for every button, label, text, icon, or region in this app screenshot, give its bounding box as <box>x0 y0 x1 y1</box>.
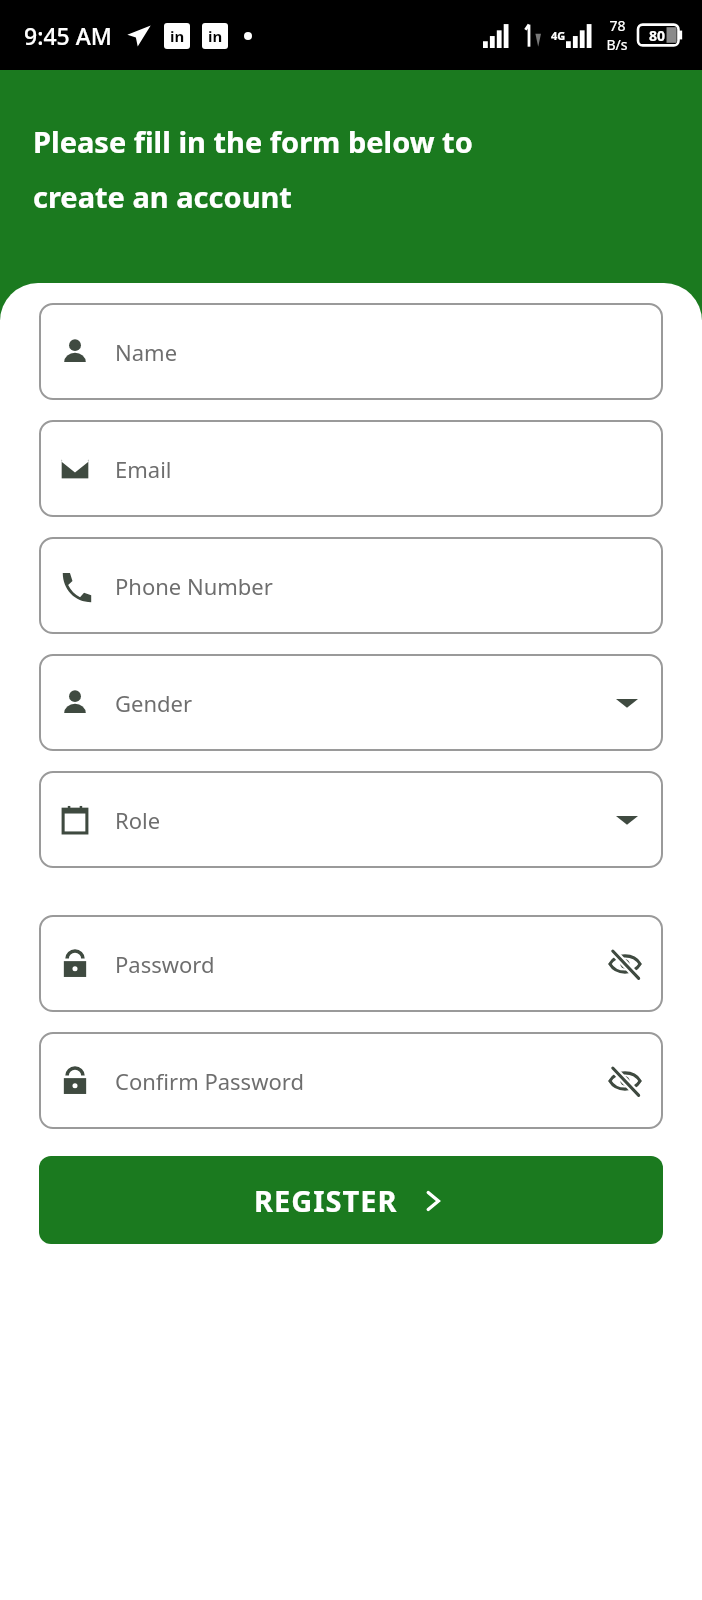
staticText: in <box>208 26 223 46</box>
staticText: Name <box>115 337 645 367</box>
other: Open dropdown <box>609 685 645 721</box>
staticText: 9:45 AM <box>24 20 112 51</box>
staticText: 4G <box>551 28 566 43</box>
staticText: 80 <box>649 26 666 45</box>
staticText: B/s <box>606 35 628 54</box>
button[interactable]: Role <box>39 771 663 868</box>
button[interactable]: Gender <box>39 654 663 751</box>
staticText: 78 <box>609 16 626 35</box>
button[interactable]: Phone Number <box>39 537 663 634</box>
button[interactable]: Name <box>39 303 663 400</box>
staticText: Password <box>115 949 605 979</box>
button[interactable]: Show password <box>605 1061 645 1101</box>
button[interactable]: Password <box>39 915 663 1012</box>
staticText: Please fill in the form below to create … <box>33 122 473 217</box>
staticText: REGISTER <box>254 1181 398 1220</box>
staticText: Email <box>115 454 645 484</box>
button[interactable]: Show password <box>605 944 645 984</box>
staticText: Role <box>115 805 609 835</box>
staticText: Gender <box>115 688 609 718</box>
staticText: in <box>170 26 185 46</box>
button[interactable]: REGISTER <box>39 1156 663 1244</box>
button[interactable]: Email <box>39 420 663 517</box>
staticText: Phone Number <box>115 571 645 601</box>
staticText: Confirm Password <box>115 1066 605 1096</box>
button[interactable]: Confirm Password <box>39 1032 663 1129</box>
other: Open dropdown <box>609 802 645 838</box>
